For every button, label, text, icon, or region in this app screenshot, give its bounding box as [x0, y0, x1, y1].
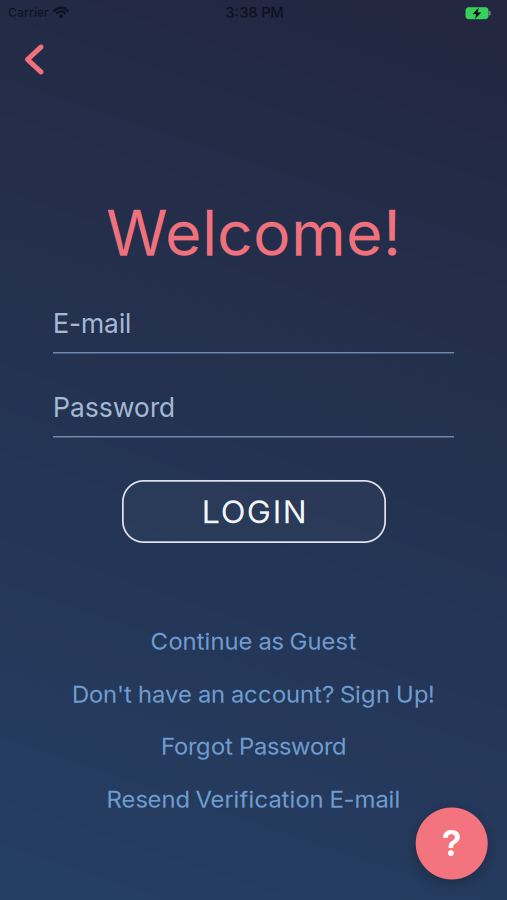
- staticText: 3:38 PM: [225, 4, 284, 21]
- staticText: Don't have an account? Sign Up!: [72, 680, 435, 708]
- staticText: Resend Verification E-mail: [106, 785, 400, 813]
- button[interactable]: Forgot Password: [161, 732, 346, 760]
- button[interactable]: Password: [53, 392, 454, 437]
- staticText: Forgot Password: [161, 732, 346, 760]
- button[interactable]: Continue as Guest: [150, 627, 356, 655]
- staticText: Welcome!: [106, 196, 401, 270]
- button[interactable]: LOGIN: [122, 480, 386, 543]
- staticText: E-mail: [53, 308, 131, 339]
- button[interactable]: E-mail: [53, 308, 454, 353]
- staticText: Password: [53, 392, 175, 423]
- button[interactable]: Back: [20, 39, 48, 79]
- staticText: LOGIN: [202, 493, 306, 530]
- staticText: Continue as Guest: [150, 627, 356, 655]
- button[interactable]: Resend Verification E-mail: [106, 785, 400, 813]
- staticText: ?: [442, 823, 462, 864]
- button[interactable]: Don't have an account? Sign Up!: [72, 680, 435, 708]
- staticText: Carrier: [8, 5, 49, 20]
- button[interactable]: Help: [416, 807, 488, 879]
